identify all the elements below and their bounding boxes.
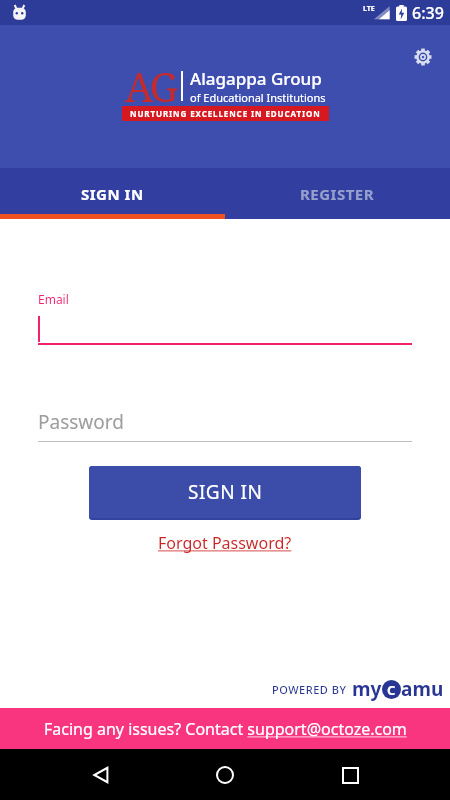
button[interactable]: SIGN IN bbox=[0, 168, 225, 219]
staticText: NURTURING EXCELLENCE IN EDUCATION bbox=[130, 108, 321, 119]
staticText: C bbox=[387, 681, 396, 699]
button[interactable]: Facing any issues? Contact support@octoz… bbox=[0, 708, 450, 749]
staticText: POWERED BY bbox=[272, 682, 347, 697]
staticText: of Educational Institutions bbox=[190, 90, 326, 105]
staticText: 6:39 bbox=[412, 2, 444, 24]
staticText: SIGN IN bbox=[81, 184, 144, 204]
staticText: amu bbox=[401, 676, 444, 702]
button[interactable]: REGISTER bbox=[225, 168, 450, 219]
button[interactable]: SIGN IN bbox=[89, 466, 361, 518]
staticText: Forgot Password? bbox=[158, 532, 292, 554]
staticText: Facing any issues? Contact support@octoz… bbox=[44, 718, 407, 740]
staticText: my bbox=[352, 676, 382, 702]
button[interactable]: Forgot Password? bbox=[158, 532, 292, 554]
button[interactable] bbox=[77, 751, 125, 799]
staticText: AG bbox=[125, 59, 175, 113]
staticText: Password bbox=[38, 409, 124, 435]
staticText: Alagappa Group bbox=[190, 67, 322, 90]
staticText: REGISTER bbox=[300, 184, 375, 204]
staticText: SIGN IN bbox=[188, 479, 263, 505]
staticText: Email bbox=[38, 291, 69, 307]
button[interactable] bbox=[326, 751, 374, 799]
staticText: LTE bbox=[363, 4, 375, 14]
button[interactable] bbox=[201, 751, 249, 799]
button[interactable] bbox=[411, 45, 435, 69]
